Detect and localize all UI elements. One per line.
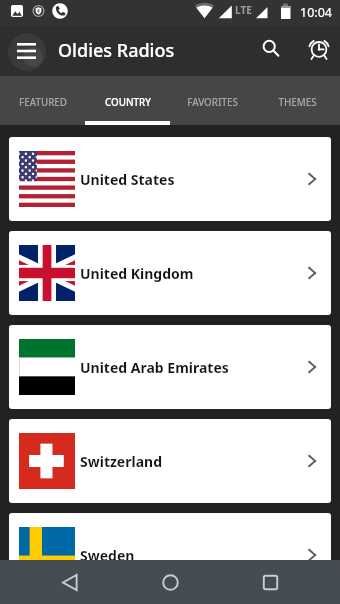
button[interactable]: Switzerland [9, 419, 331, 503]
staticText: COUNTRY [105, 96, 151, 109]
button[interactable]: COUNTRY [85, 76, 170, 125]
button[interactable]: THEMES [255, 76, 340, 125]
button[interactable]: Search [248, 26, 294, 76]
staticText: United Arab Emirates [80, 358, 229, 377]
button[interactable]: United Arab Emirates [9, 325, 331, 409]
button[interactable]: Back [40, 560, 100, 604]
button[interactable]: Sweden [9, 513, 331, 560]
button[interactable]: FEATURED [0, 76, 85, 125]
staticText: United States [80, 170, 175, 189]
staticText: 10:04 [300, 4, 332, 21]
staticText: United Kingdom [80, 264, 194, 283]
staticText: Switzerland [80, 452, 162, 471]
staticText: LTE [235, 3, 252, 17]
button[interactable]: Open navigation menu [0, 26, 52, 76]
button[interactable]: FAVORITES [170, 76, 255, 125]
staticText: THEMES [278, 96, 317, 109]
button[interactable]: Alarm [294, 26, 340, 76]
button[interactable]: Recent apps [240, 560, 300, 604]
button[interactable]: United States [9, 137, 331, 221]
staticText: FAVORITES [187, 96, 238, 109]
button[interactable]: United Kingdom [9, 231, 331, 315]
staticText: FEATURED [19, 96, 67, 109]
staticText: Sweden [80, 546, 135, 560]
button[interactable]: Home [140, 560, 200, 604]
staticText: Oldies Radios [58, 38, 175, 63]
